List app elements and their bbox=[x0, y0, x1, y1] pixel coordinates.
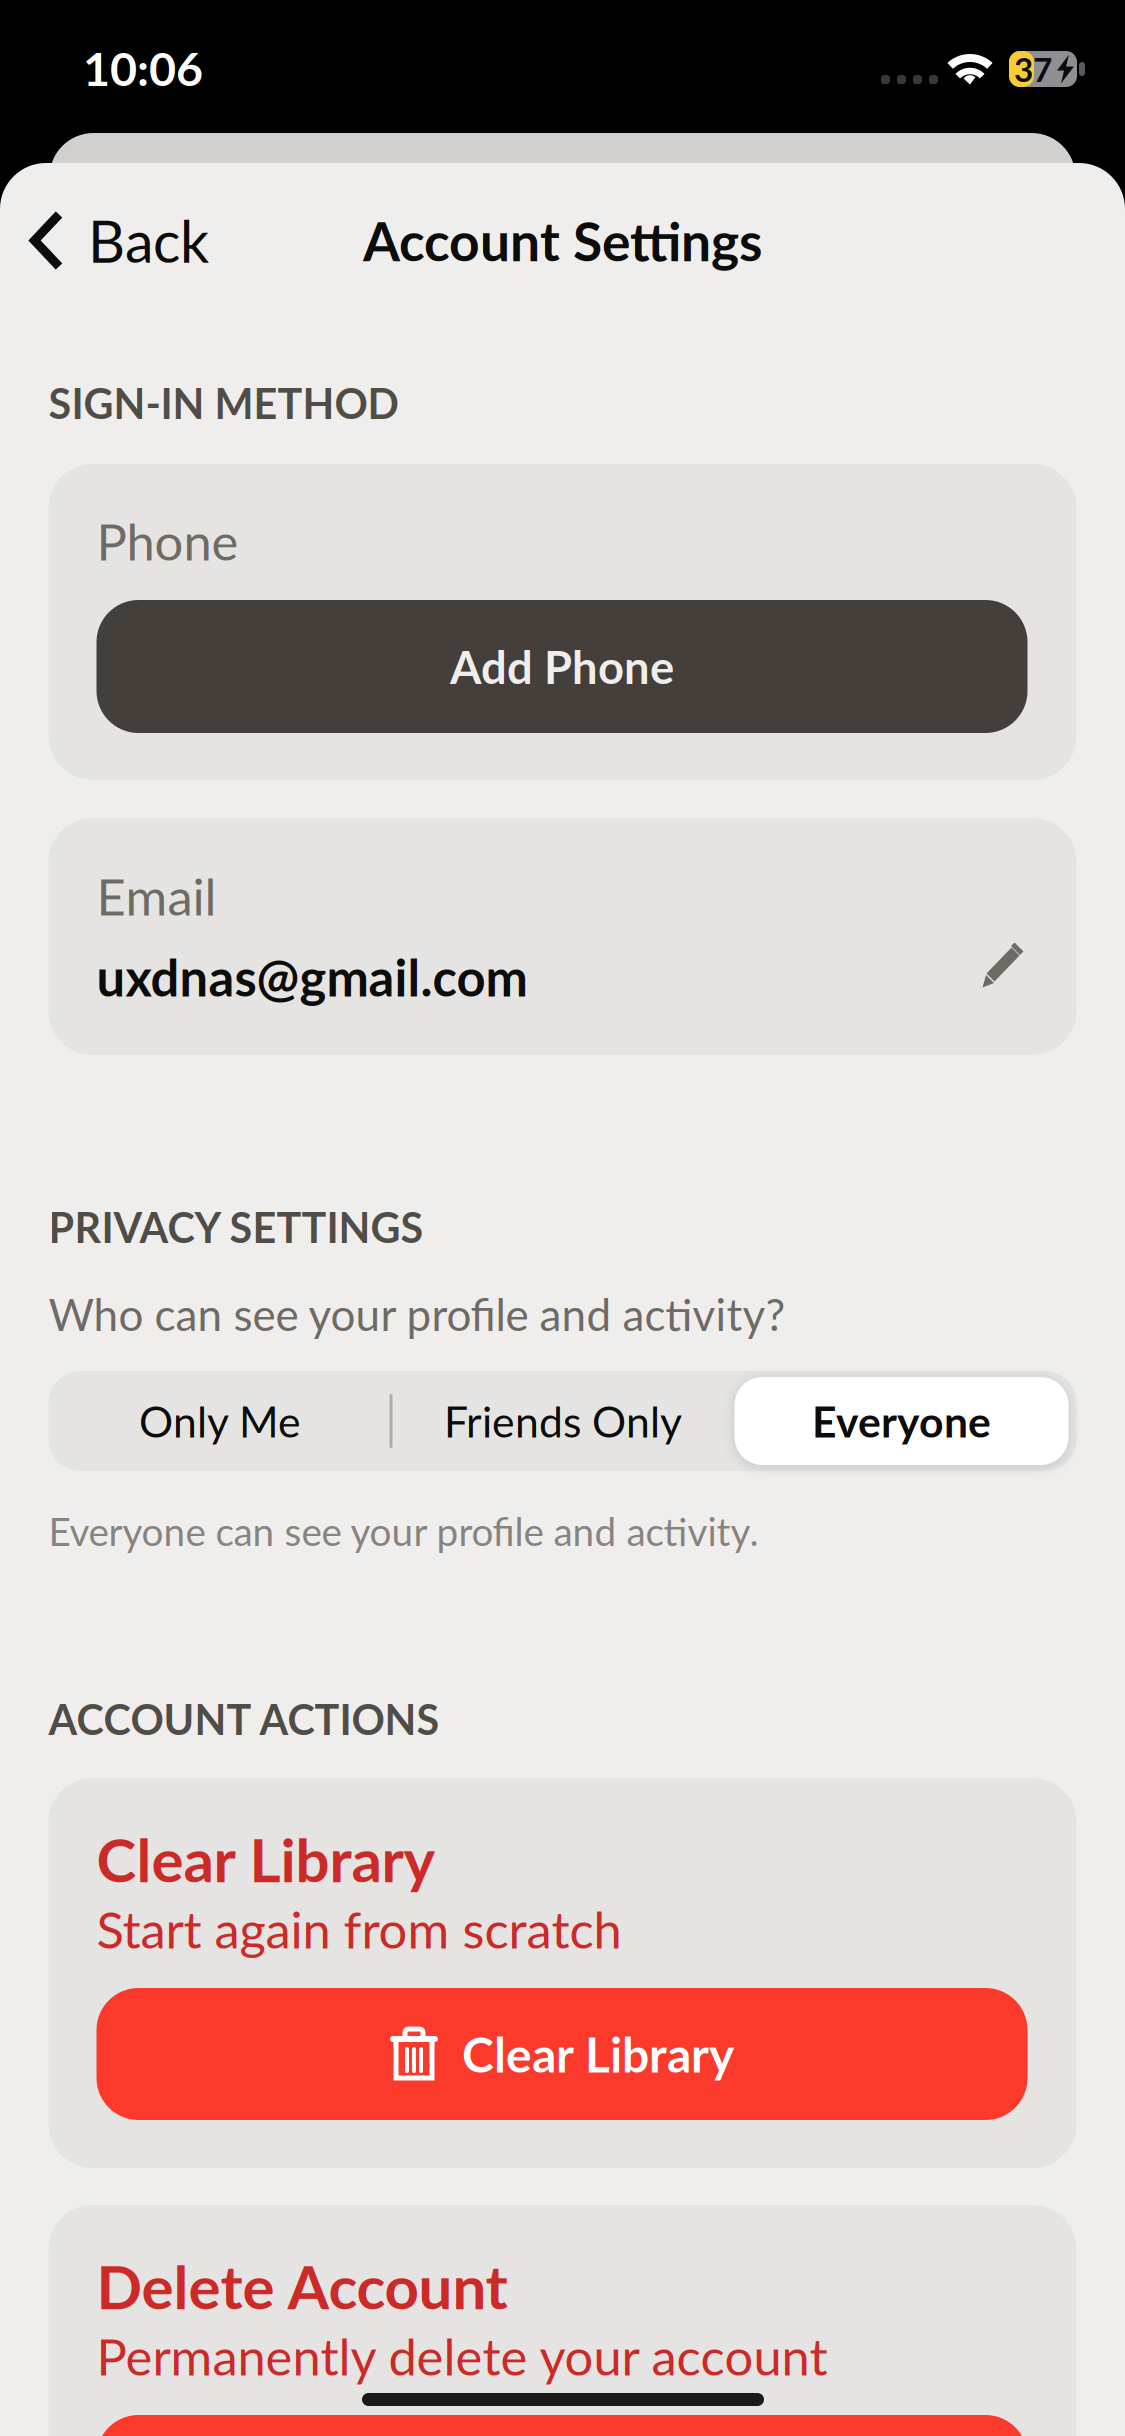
staticText: Clear Library bbox=[96, 1823, 435, 1895]
staticText: Phone bbox=[96, 511, 238, 571]
button[interactable]: Edit email bbox=[960, 920, 1046, 1010]
staticText: Permanently delete your account bbox=[96, 2326, 827, 2386]
staticText: Account Settings bbox=[363, 208, 762, 272]
staticText: Friends Only bbox=[444, 1395, 682, 1447]
staticText: Delete Account bbox=[96, 2250, 507, 2322]
staticText: 37 bbox=[1014, 49, 1052, 89]
staticText: Back bbox=[88, 206, 209, 275]
button[interactable]: Back bbox=[0, 190, 237, 291]
staticText: Start again from scratch bbox=[96, 1899, 621, 1959]
button[interactable]: Friends Only bbox=[391, 1371, 734, 1471]
button[interactable]: Delete Account bbox=[96, 2415, 1027, 2436]
staticText: Clear Library bbox=[462, 2025, 734, 2083]
button[interactable]: Add Phone bbox=[96, 600, 1027, 733]
staticText: Who can see your profile and activity? bbox=[48, 1288, 785, 1340]
button[interactable]: Clear Library bbox=[96, 1988, 1027, 2120]
staticText: ACCOUNT ACTIONS bbox=[48, 1694, 439, 1744]
staticText: Everyone bbox=[812, 1395, 991, 1447]
staticText: Email bbox=[96, 866, 216, 926]
staticText: Only Me bbox=[139, 1395, 301, 1447]
button[interactable]: Everyone bbox=[734, 1377, 1068, 1465]
staticText: PRIVACY SETTINGS bbox=[48, 1202, 423, 1252]
staticText: 10:06 bbox=[83, 40, 203, 96]
staticText: Add Phone bbox=[450, 639, 674, 694]
button[interactable]: Only Me bbox=[48, 1371, 391, 1471]
staticText: Everyone can see your profile and activi… bbox=[48, 1508, 758, 1554]
staticText: uxdnas@gmail.com bbox=[96, 947, 527, 1007]
staticText: SIGN-IN METHOD bbox=[48, 378, 398, 428]
